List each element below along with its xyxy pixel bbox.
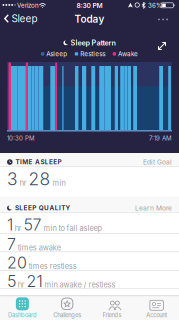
staticText: 28 [29,168,51,189]
button[interactable]: Learn More [133,202,174,214]
staticText: min awake / restless [44,280,115,289]
button[interactable] [154,14,172,24]
staticText: Sleep [11,12,37,25]
staticText: 20 [7,253,27,272]
button[interactable]: Sleep [0,0,37,25]
staticText: hr [15,224,22,233]
staticText: times restless [29,262,77,271]
staticText: min to fall asleep [43,224,102,233]
button[interactable]: Friends [89,297,134,319]
staticText: hr [20,179,27,188]
staticText: Verizon [17,2,39,9]
staticText: 8:30 PM [76,2,102,10]
button[interactable]: Edit Goal [141,156,174,168]
staticText: Dashboard [8,312,37,319]
staticText: 10:30 PM [7,134,35,142]
staticText: Today [74,13,104,25]
staticText: Learn More [135,204,172,212]
button[interactable]: Challenges [45,297,90,319]
button[interactable] [154,38,169,53]
staticText: 21 [27,271,43,291]
staticText: Edit Goal [143,158,172,166]
staticText: Awake [118,50,138,58]
staticText: Restless [80,50,105,58]
staticText: min [52,179,65,188]
staticText: 7 [7,234,16,254]
button[interactable]: Dashboard [0,297,45,319]
staticText: Asleep [46,50,67,58]
staticText: 3 [7,168,18,189]
staticText: 1 [7,215,13,234]
staticText: 57 [24,215,42,234]
staticText: Account [146,312,167,319]
staticText: Friends [102,312,121,319]
staticText: times awake [18,243,61,252]
staticText: SLEEP QUALITY [15,204,71,212]
staticText: 7:19 AM [149,134,172,142]
button[interactable]: Account [134,297,179,319]
staticText: TIME ASLEEP [16,158,62,166]
staticText: hr [18,280,25,289]
staticText: 5 [7,271,16,291]
staticText: 36% [148,2,162,9]
staticText: Challenges [53,312,81,319]
staticText: Sleep Pattern [70,38,115,47]
